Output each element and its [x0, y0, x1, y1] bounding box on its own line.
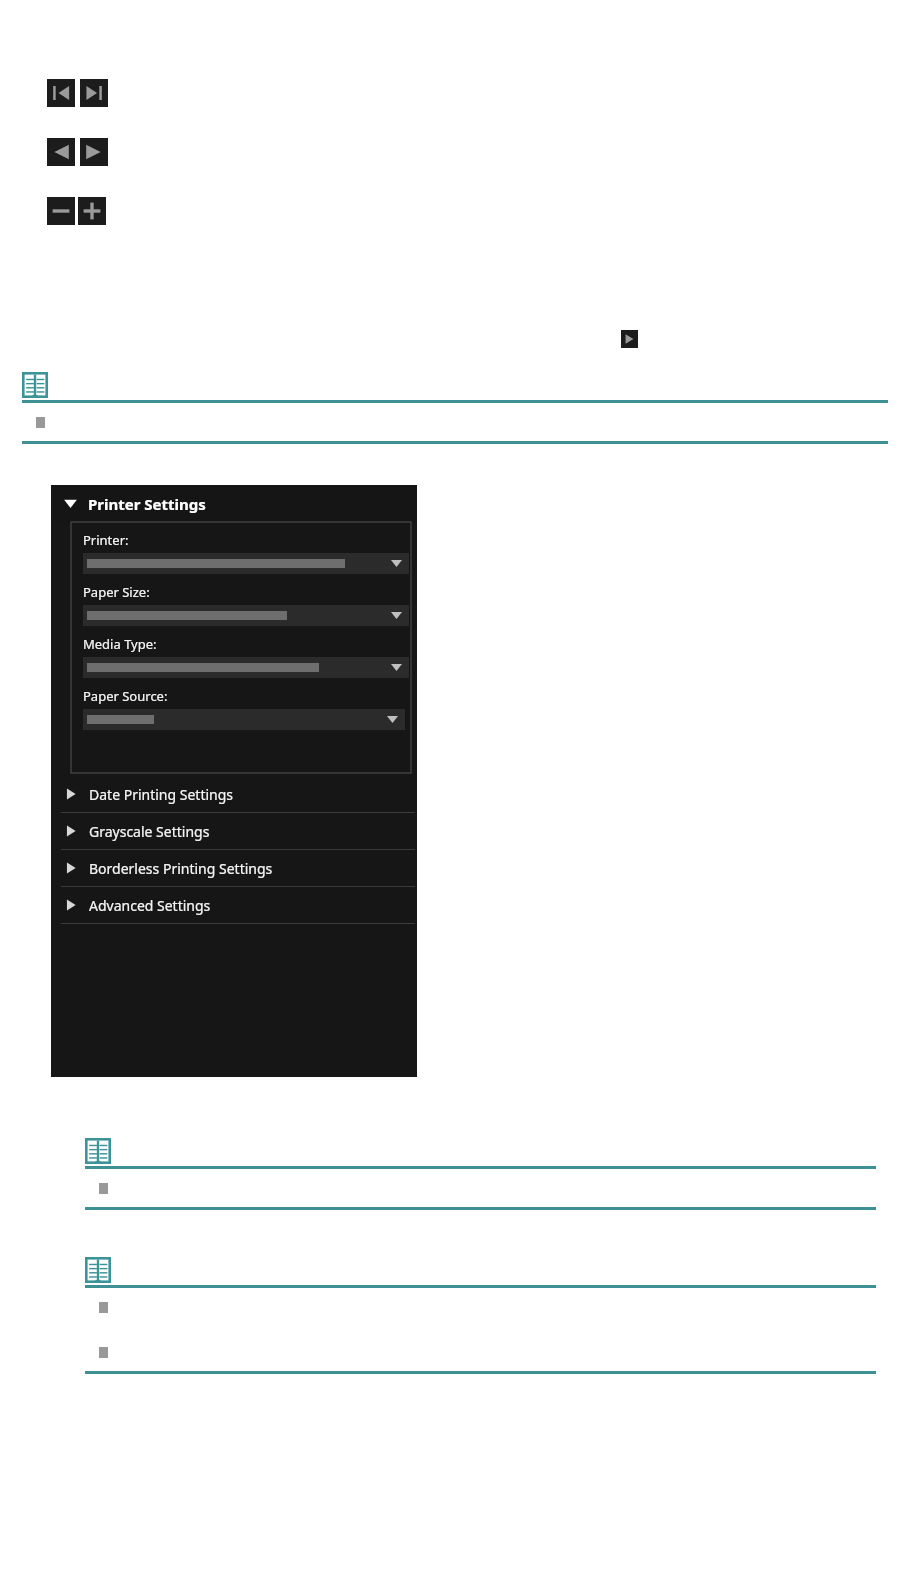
button[interactable]: Previous page	[47, 79, 75, 107]
staticText: Borderless Printing Settings	[89, 859, 273, 878]
button[interactable]: Date Printing Settings	[51, 776, 417, 812]
button[interactable]: Media Type:	[83, 657, 409, 678]
staticText: Printer Settings	[88, 494, 206, 514]
button[interactable]: Printer:	[83, 553, 409, 574]
staticText: Paper Source:	[83, 687, 168, 705]
button[interactable]: Zoom out	[47, 197, 75, 225]
other: Note	[85, 1138, 111, 1164]
button[interactable]: Next	[80, 138, 108, 166]
button[interactable]: Advanced Settings	[51, 887, 417, 923]
other: Note	[85, 1257, 111, 1283]
staticText: Date Printing Settings	[89, 785, 234, 804]
button[interactable]: Printer Settings	[51, 485, 417, 522]
staticText: Grayscale Settings	[89, 822, 210, 841]
button[interactable]: Paper Source:	[83, 709, 405, 730]
button[interactable]: Grayscale Settings	[51, 813, 417, 849]
button[interactable]: Go	[621, 330, 638, 348]
button[interactable]: Next page	[80, 79, 108, 107]
button[interactable]: Borderless Printing Settings	[51, 850, 417, 886]
other: Note	[22, 372, 48, 398]
staticText: Advanced Settings	[89, 896, 211, 915]
button[interactable]: Previous	[47, 138, 75, 166]
button[interactable]: Zoom in	[78, 197, 106, 225]
button[interactable]: Paper Size:	[83, 605, 409, 626]
staticText: Paper Size:	[83, 583, 150, 601]
staticText: Media Type:	[83, 635, 157, 653]
staticText: Printer:	[83, 531, 129, 549]
